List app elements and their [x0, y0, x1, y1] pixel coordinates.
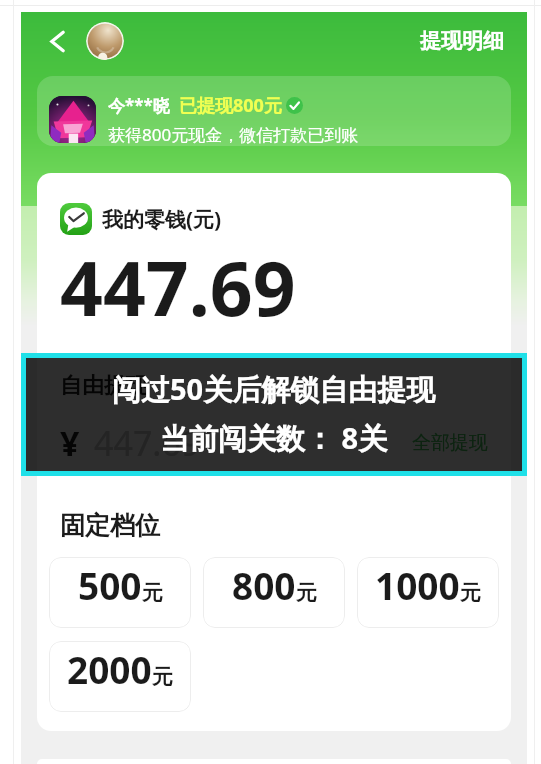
- button[interactable]: 今***晓: [37, 76, 511, 146]
- staticText: 提现明细: [420, 28, 504, 54]
- staticText: 2000: [67, 644, 152, 694]
- button[interactable]: 500: [49, 557, 191, 628]
- button[interactable]: Profile: [86, 22, 124, 60]
- button[interactable]: 2000: [49, 641, 191, 712]
- staticText: 全部提现: [412, 431, 488, 455]
- button[interactable]: 提现明细: [420, 28, 504, 54]
- staticText: 元: [460, 580, 481, 606]
- staticText: 已提现800元: [179, 93, 282, 118]
- staticText: 固定档位: [60, 510, 160, 541]
- staticText: 元: [296, 580, 317, 606]
- staticText: 今***晓: [108, 94, 170, 117]
- staticText: 447.69: [60, 236, 296, 338]
- staticText: 800: [232, 560, 296, 610]
- staticText: 获得800元现金，微信打款已到账: [108, 123, 359, 146]
- staticText: 元: [152, 664, 173, 690]
- staticText: ¥: [60, 420, 80, 466]
- button[interactable]: 全部提现: [412, 431, 488, 455]
- staticText: 自由提现: [60, 372, 148, 400]
- button[interactable]: Back: [40, 24, 74, 58]
- button[interactable]: 1000: [357, 557, 499, 628]
- button[interactable]: 800: [203, 557, 345, 628]
- staticText: 1000: [375, 560, 460, 610]
- staticText: 500: [78, 560, 142, 610]
- staticText: 元: [142, 580, 163, 606]
- staticText: 447.69: [94, 420, 201, 466]
- staticText: 闯过50关后解锁自由提现: [112, 369, 436, 409]
- staticText: 我的零钱(元): [102, 205, 222, 234]
- staticText: 当前闯关数： 8关: [160, 418, 388, 458]
